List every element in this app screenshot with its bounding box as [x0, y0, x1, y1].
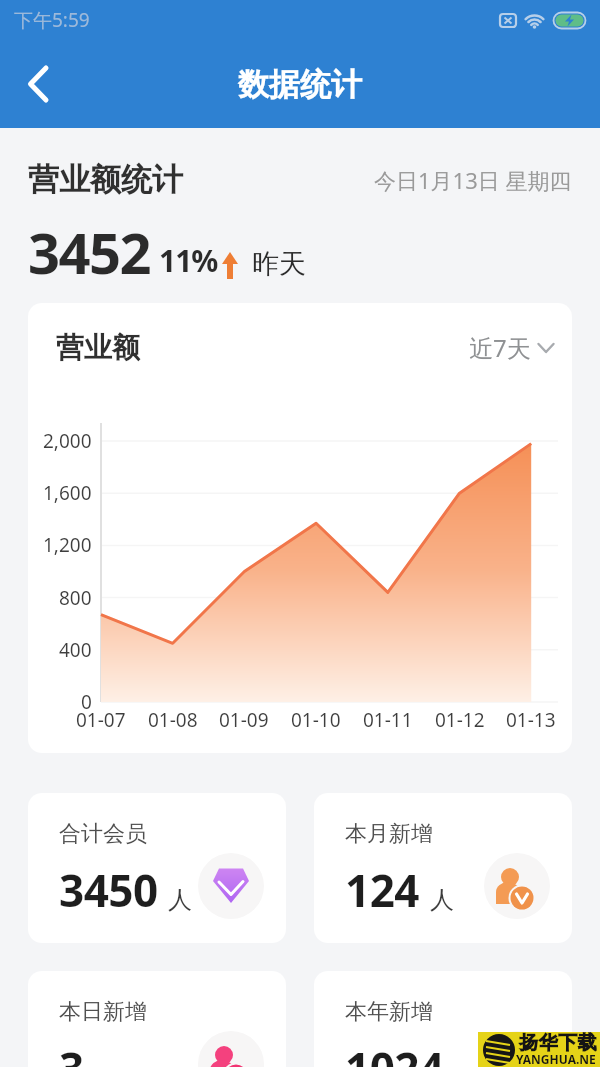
- staticText: 人: [168, 885, 192, 915]
- staticText: 扬华下载: [519, 1031, 597, 1055]
- staticText: 01-13: [506, 707, 556, 733]
- staticText: 营业额统计: [28, 160, 183, 199]
- staticText: 今日1月13日 星期四: [374, 165, 572, 195]
- staticText: 01-12: [435, 707, 485, 733]
- button[interactable]: [16, 62, 60, 106]
- staticText: 01-07: [76, 707, 126, 733]
- staticText: 01-11: [363, 707, 413, 733]
- staticText: 400: [59, 637, 92, 663]
- staticText: 1,200: [43, 532, 92, 558]
- staticText: 近7天: [469, 331, 531, 364]
- staticText: 3452: [28, 214, 151, 290]
- staticText: 营业额: [56, 330, 140, 365]
- staticText: 01-09: [219, 707, 269, 733]
- staticText: 01-10: [291, 707, 341, 733]
- button[interactable]: 合计会员: [28, 793, 286, 943]
- staticText: 1024: [345, 1038, 444, 1067]
- staticText: 01-08: [148, 707, 198, 733]
- staticText: 本月新增: [345, 820, 433, 848]
- button[interactable]: 近7天: [469, 331, 556, 364]
- staticText: 1,600: [43, 480, 92, 506]
- staticText: 0: [81, 689, 92, 715]
- staticText: 数据统计: [238, 65, 362, 104]
- staticText: 2,000: [43, 428, 92, 454]
- staticText: 本年新增: [345, 998, 433, 1026]
- staticText: 3: [59, 1038, 84, 1067]
- staticText: 人: [430, 885, 454, 915]
- staticText: 11%: [159, 240, 218, 281]
- staticText: 800: [59, 585, 92, 611]
- staticText: 昨天: [252, 247, 306, 281]
- staticText: 下午5:59: [14, 7, 90, 33]
- staticText: 3450: [59, 860, 158, 920]
- staticText: YANGHUA.NET: [516, 1051, 600, 1067]
- staticText: 合计会员: [59, 820, 147, 848]
- button[interactable]: 本日新增: [28, 971, 286, 1067]
- staticText: 本日新增: [59, 998, 147, 1026]
- staticText: 124: [345, 860, 420, 920]
- button[interactable]: 本年新增: [314, 971, 572, 1067]
- button[interactable]: 本月新增: [314, 793, 572, 943]
